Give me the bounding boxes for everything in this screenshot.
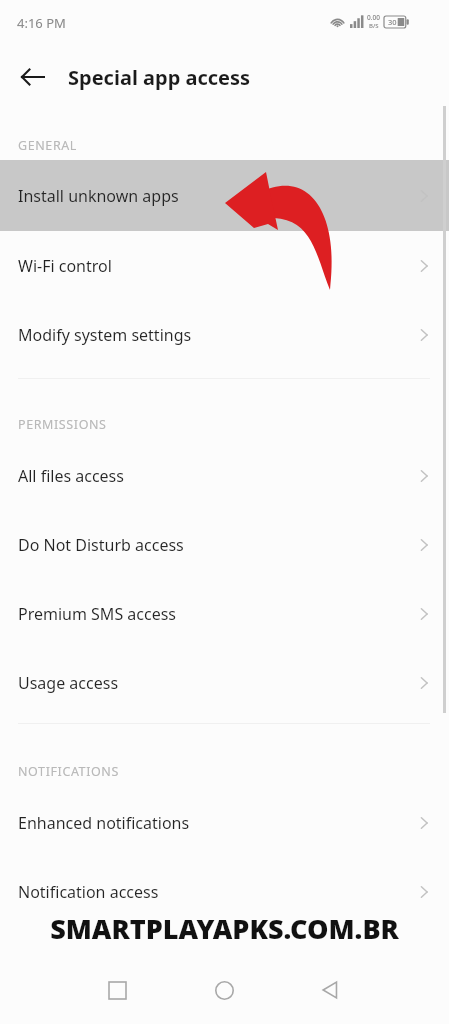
staticText: Enhanced notifications bbox=[18, 812, 415, 834]
staticText: 30 bbox=[388, 17, 397, 27]
button[interactable]: Enhanced notifications bbox=[0, 788, 449, 857]
button[interactable]: Install unknown apps bbox=[0, 160, 449, 231]
button[interactable]: Home bbox=[207, 956, 241, 1024]
button[interactable]: Wi-Fi control bbox=[0, 231, 449, 300]
staticText: Wi-Fi control bbox=[18, 255, 415, 277]
staticText: Special app access bbox=[68, 64, 251, 91]
staticText: PERMISSIONS bbox=[18, 416, 107, 433]
button[interactable]: Do Not Disturb access bbox=[0, 510, 449, 579]
staticText: Do Not Disturb access bbox=[18, 534, 415, 556]
staticText: NOTIFICATIONS bbox=[18, 763, 119, 780]
button[interactable]: Back bbox=[12, 56, 54, 98]
staticText: Notification access bbox=[18, 881, 415, 903]
button[interactable]: Premium SMS access bbox=[0, 579, 449, 648]
staticText: Install unknown apps bbox=[18, 185, 415, 207]
staticText: 4:16 PM bbox=[17, 14, 66, 32]
staticText: GENERAL bbox=[18, 137, 78, 154]
staticText: Usage access bbox=[18, 672, 415, 694]
staticText: 0.00 bbox=[367, 13, 380, 22]
staticText: Modify system settings bbox=[18, 324, 415, 346]
button[interactable]: Usage access bbox=[0, 648, 449, 717]
button[interactable]: Notification access bbox=[0, 857, 449, 926]
staticText: B/S bbox=[369, 22, 379, 30]
button[interactable]: Modify system settings bbox=[0, 300, 449, 369]
button[interactable]: Back bbox=[313, 956, 347, 1024]
staticText: All files access bbox=[18, 465, 415, 487]
staticText: SMARTPLAYAPKS.COM.BR bbox=[50, 910, 399, 947]
staticText: Premium SMS access bbox=[18, 603, 415, 625]
button[interactable]: All files access bbox=[0, 441, 449, 510]
button[interactable]: Recent apps bbox=[100, 956, 134, 1024]
